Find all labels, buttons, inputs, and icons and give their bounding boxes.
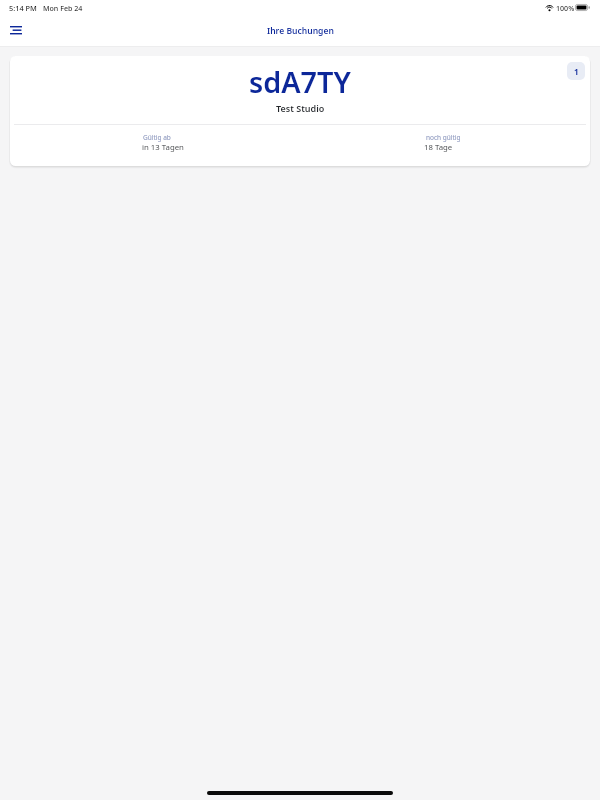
button[interactable]: Menu: [4, 20, 28, 40]
staticText: noch gültig: [426, 133, 461, 142]
other: Wi-Fi: [545, 5, 554, 11]
staticText: 18 Tage: [424, 142, 453, 153]
button[interactable]: sdA7TY: [10, 56, 590, 166]
staticText: Ihre Buchungen: [267, 25, 334, 37]
staticText: Gültig ab: [143, 133, 171, 142]
staticText: 1: [574, 66, 579, 77]
button[interactable]: 1: [567, 62, 585, 80]
staticText: Mon Feb 24: [43, 3, 83, 13]
other: Battery 100 percent: [575, 4, 590, 11]
staticText: 100%: [556, 3, 575, 13]
staticText: sdA7TY: [249, 62, 351, 101]
staticText: in 13 Tagen: [142, 142, 184, 153]
staticText: Test Studio: [276, 102, 325, 114]
staticText: 5:14 PM: [9, 3, 37, 13]
